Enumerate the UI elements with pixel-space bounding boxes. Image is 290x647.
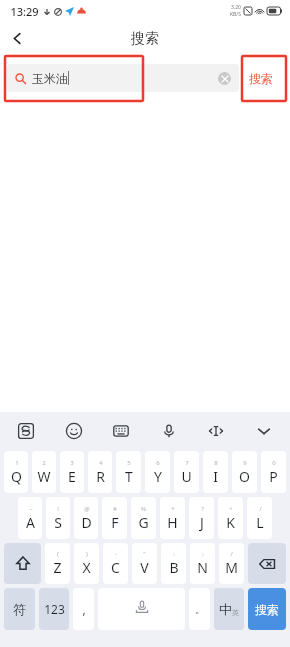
staticText: G: [138, 513, 149, 532]
button[interactable]: !: [46, 497, 70, 539]
button[interactable]: Clear: [218, 72, 231, 85]
staticText: Q: [11, 467, 22, 486]
staticText: (: [57, 550, 59, 558]
button[interactable]: 搜索: [248, 588, 286, 630]
staticText: 7: [185, 459, 189, 467]
staticText: A: [26, 513, 35, 532]
staticText: S: [54, 513, 62, 532]
staticText: F: [111, 513, 119, 532]
button[interactable]: /: [219, 543, 244, 584]
staticText: I: [213, 467, 218, 486]
staticText: U: [181, 467, 192, 486]
button[interactable]: 玉米油: [7, 64, 239, 92]
button[interactable]: 。: [189, 588, 210, 630]
staticText: ": [143, 550, 146, 558]
staticText: ?: [201, 505, 204, 513]
staticText: E: [68, 467, 76, 486]
button[interactable]: +: [218, 497, 243, 539]
staticText: L: [256, 513, 264, 532]
staticText: 123: [44, 601, 65, 617]
button[interactable]: Sogou input: [12, 417, 40, 445]
staticText: 6: [156, 459, 160, 467]
staticText: 2: [42, 459, 46, 467]
staticText: 搜索: [249, 71, 273, 86]
button[interactable]: 123: [39, 588, 69, 630]
button[interactable]: Shift: [4, 543, 41, 584]
button[interactable]: (: [45, 543, 70, 584]
staticText: /: [230, 550, 233, 558]
staticText: ,: [82, 601, 86, 617]
staticText: :: [173, 550, 175, 558]
staticText: ~: [29, 505, 33, 513]
staticText: H: [167, 513, 178, 532]
staticText: @: [84, 505, 90, 513]
button[interactable]: ): [74, 543, 99, 584]
button[interactable]: ?: [189, 497, 214, 539]
button[interactable]: Emoji: [60, 417, 88, 445]
button[interactable]: 1: [4, 451, 28, 493]
button[interactable]: Hide keyboard: [250, 417, 278, 445]
button[interactable]: -: [103, 543, 128, 584]
staticText: 5: [127, 459, 131, 467]
staticText: 符: [13, 601, 26, 617]
button[interactable]: Voice input: [155, 417, 183, 445]
button[interactable]: 7: [174, 451, 199, 493]
button[interactable]: 3: [60, 451, 84, 493]
staticText: 搜索: [131, 30, 159, 48]
staticText: KB/S: [230, 11, 241, 18]
staticText: X: [82, 558, 91, 577]
button[interactable]: @: [74, 497, 98, 539]
button[interactable]: 0: [261, 451, 286, 493]
staticText: J: [200, 513, 204, 532]
staticText: +: [229, 505, 233, 513]
staticText: 。: [195, 603, 205, 616]
staticText: O: [239, 467, 250, 486]
button[interactable]: *: [160, 497, 185, 539]
button[interactable]: /: [247, 497, 272, 539]
staticText: ): [86, 550, 88, 558]
staticText: Y: [154, 467, 162, 486]
staticText: 8: [214, 459, 218, 467]
staticText: Z: [53, 558, 62, 577]
button[interactable]: 6: [145, 451, 170, 493]
staticText: W: [37, 467, 51, 486]
button[interactable]: ,: [73, 588, 94, 630]
staticText: B: [169, 558, 179, 577]
staticText: 英: [232, 608, 239, 617]
button[interactable]: %: [131, 497, 156, 539]
staticText: %: [141, 505, 146, 513]
staticText: K: [226, 513, 235, 532]
button[interactable]: Keyboard layout: [107, 417, 135, 445]
staticText: 13:29: [10, 4, 39, 19]
button[interactable]: 9: [232, 451, 257, 493]
button[interactable]: 4: [88, 451, 112, 493]
staticText: 3.20: [231, 4, 241, 11]
staticText: *: [171, 505, 175, 513]
staticText: 中: [219, 601, 232, 617]
button[interactable]: 8: [203, 451, 228, 493]
staticText: ;: [202, 550, 204, 558]
button[interactable]: 搜索: [239, 63, 283, 93]
button[interactable]: Backspace: [248, 543, 286, 584]
staticText: 1: [15, 459, 19, 467]
button[interactable]: 符: [4, 588, 35, 630]
button[interactable]: Back: [0, 22, 34, 55]
button[interactable]: ~: [18, 497, 42, 539]
button[interactable]: ;: [190, 543, 215, 584]
staticText: /: [259, 505, 262, 513]
button[interactable]: #: [102, 497, 127, 539]
staticText: 0: [272, 459, 276, 467]
staticText: 玉米油: [32, 71, 68, 86]
staticText: #: [113, 505, 117, 513]
staticText: D: [81, 513, 92, 532]
button[interactable]: Space: [98, 588, 185, 630]
button[interactable]: 中: [214, 588, 244, 630]
button[interactable]: ": [132, 543, 157, 584]
staticText: M: [225, 558, 238, 577]
staticText: V: [140, 558, 149, 577]
button[interactable]: :: [161, 543, 186, 584]
button[interactable]: 5: [116, 451, 141, 493]
staticText: C: [111, 558, 120, 577]
button[interactable]: Cursor move: [202, 417, 230, 445]
button[interactable]: 2: [32, 451, 56, 493]
